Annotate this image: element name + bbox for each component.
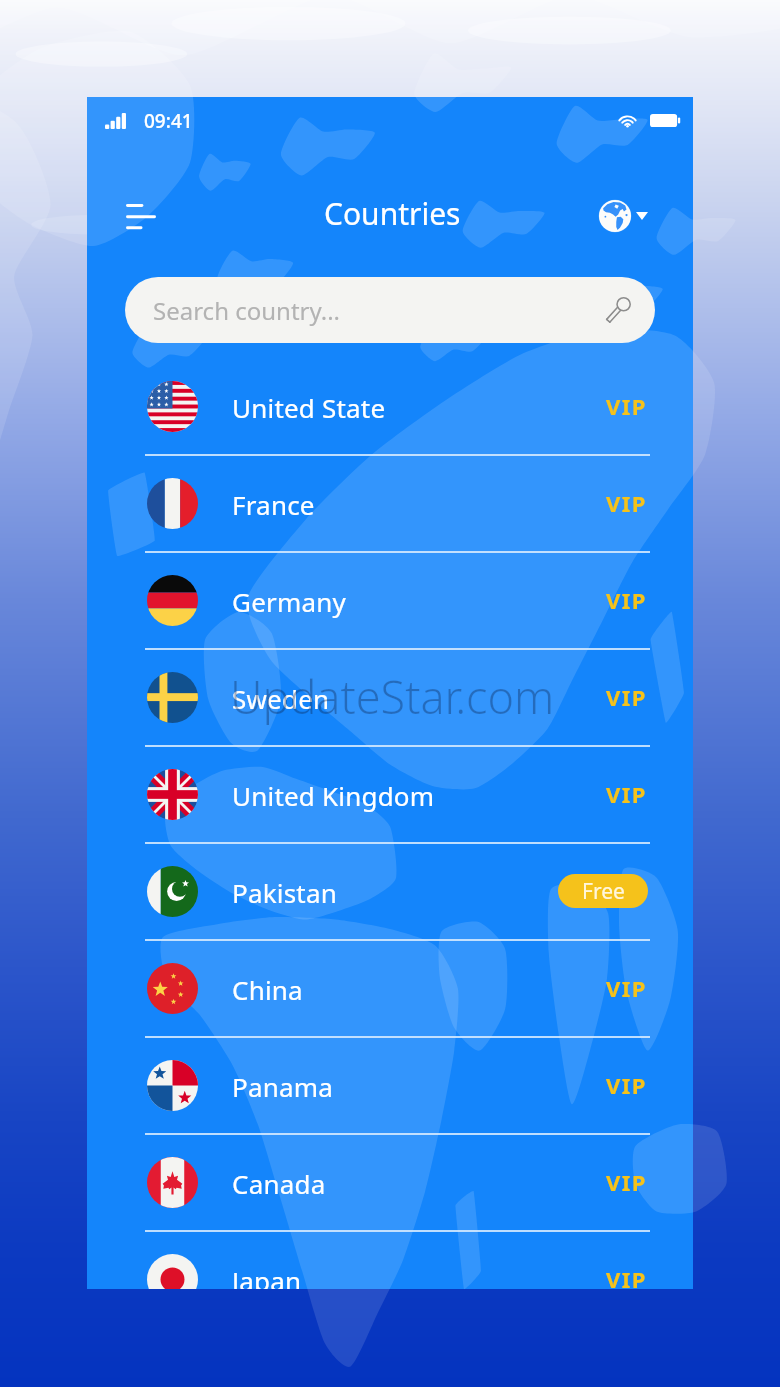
button[interactable]: VIP: [606, 488, 648, 518]
staticText: Sweden: [232, 681, 330, 716]
staticText: VIP: [606, 1070, 648, 1100]
button[interactable]: VIP: [606, 585, 648, 615]
button[interactable]: VIP: [606, 1070, 648, 1100]
button[interactable]: Japan: [87, 1232, 693, 1289]
staticText: Panama: [232, 1069, 334, 1104]
button[interactable]: Sweden: [87, 650, 693, 747]
button[interactable]: VIP: [606, 1264, 648, 1289]
staticText: Germany: [232, 584, 346, 619]
button[interactable]: Free: [558, 874, 648, 908]
staticText: Search country...: [153, 294, 341, 327]
button[interactable]: VIP: [606, 682, 648, 712]
button[interactable]: United State: [87, 359, 693, 456]
staticText: VIP: [606, 488, 648, 518]
staticText: France: [232, 487, 315, 522]
staticText: VIP: [606, 682, 648, 712]
staticText: UpdateStar.com: [230, 666, 555, 727]
staticText: VIP: [606, 1167, 648, 1197]
staticText: Countries: [324, 193, 461, 234]
staticText: Pakistan: [232, 875, 338, 910]
button[interactable]: Germany: [87, 553, 693, 650]
button[interactable]: Select region: [595, 196, 652, 236]
button[interactable]: VIP: [606, 973, 648, 1003]
button[interactable]: VIP: [606, 779, 648, 809]
button[interactable]: Menu: [117, 193, 165, 241]
button[interactable]: Canada: [87, 1135, 693, 1232]
staticText: VIP: [606, 391, 648, 421]
button[interactable]: China: [87, 941, 693, 1038]
staticText: Free: [582, 877, 625, 906]
button[interactable]: Panama: [87, 1038, 693, 1135]
button[interactable]: VIP: [606, 391, 648, 421]
button[interactable]: United Kingdom: [87, 747, 693, 844]
staticText: VIP: [606, 585, 648, 615]
staticText: United State: [232, 390, 386, 425]
staticText: VIP: [606, 973, 648, 1003]
staticText: United Kingdom: [232, 778, 435, 813]
button[interactable]: Pakistan: [87, 844, 693, 941]
button[interactable]: VIP: [606, 1167, 648, 1197]
button[interactable]: France: [87, 456, 693, 553]
staticText: Japan: [232, 1263, 302, 1289]
staticText: VIP: [606, 779, 648, 809]
button[interactable]: Search country...: [125, 277, 655, 343]
staticText: 09:41: [144, 108, 193, 134]
staticText: Canada: [232, 1166, 326, 1201]
staticText: China: [232, 972, 303, 1007]
staticText: VIP: [606, 1264, 648, 1289]
